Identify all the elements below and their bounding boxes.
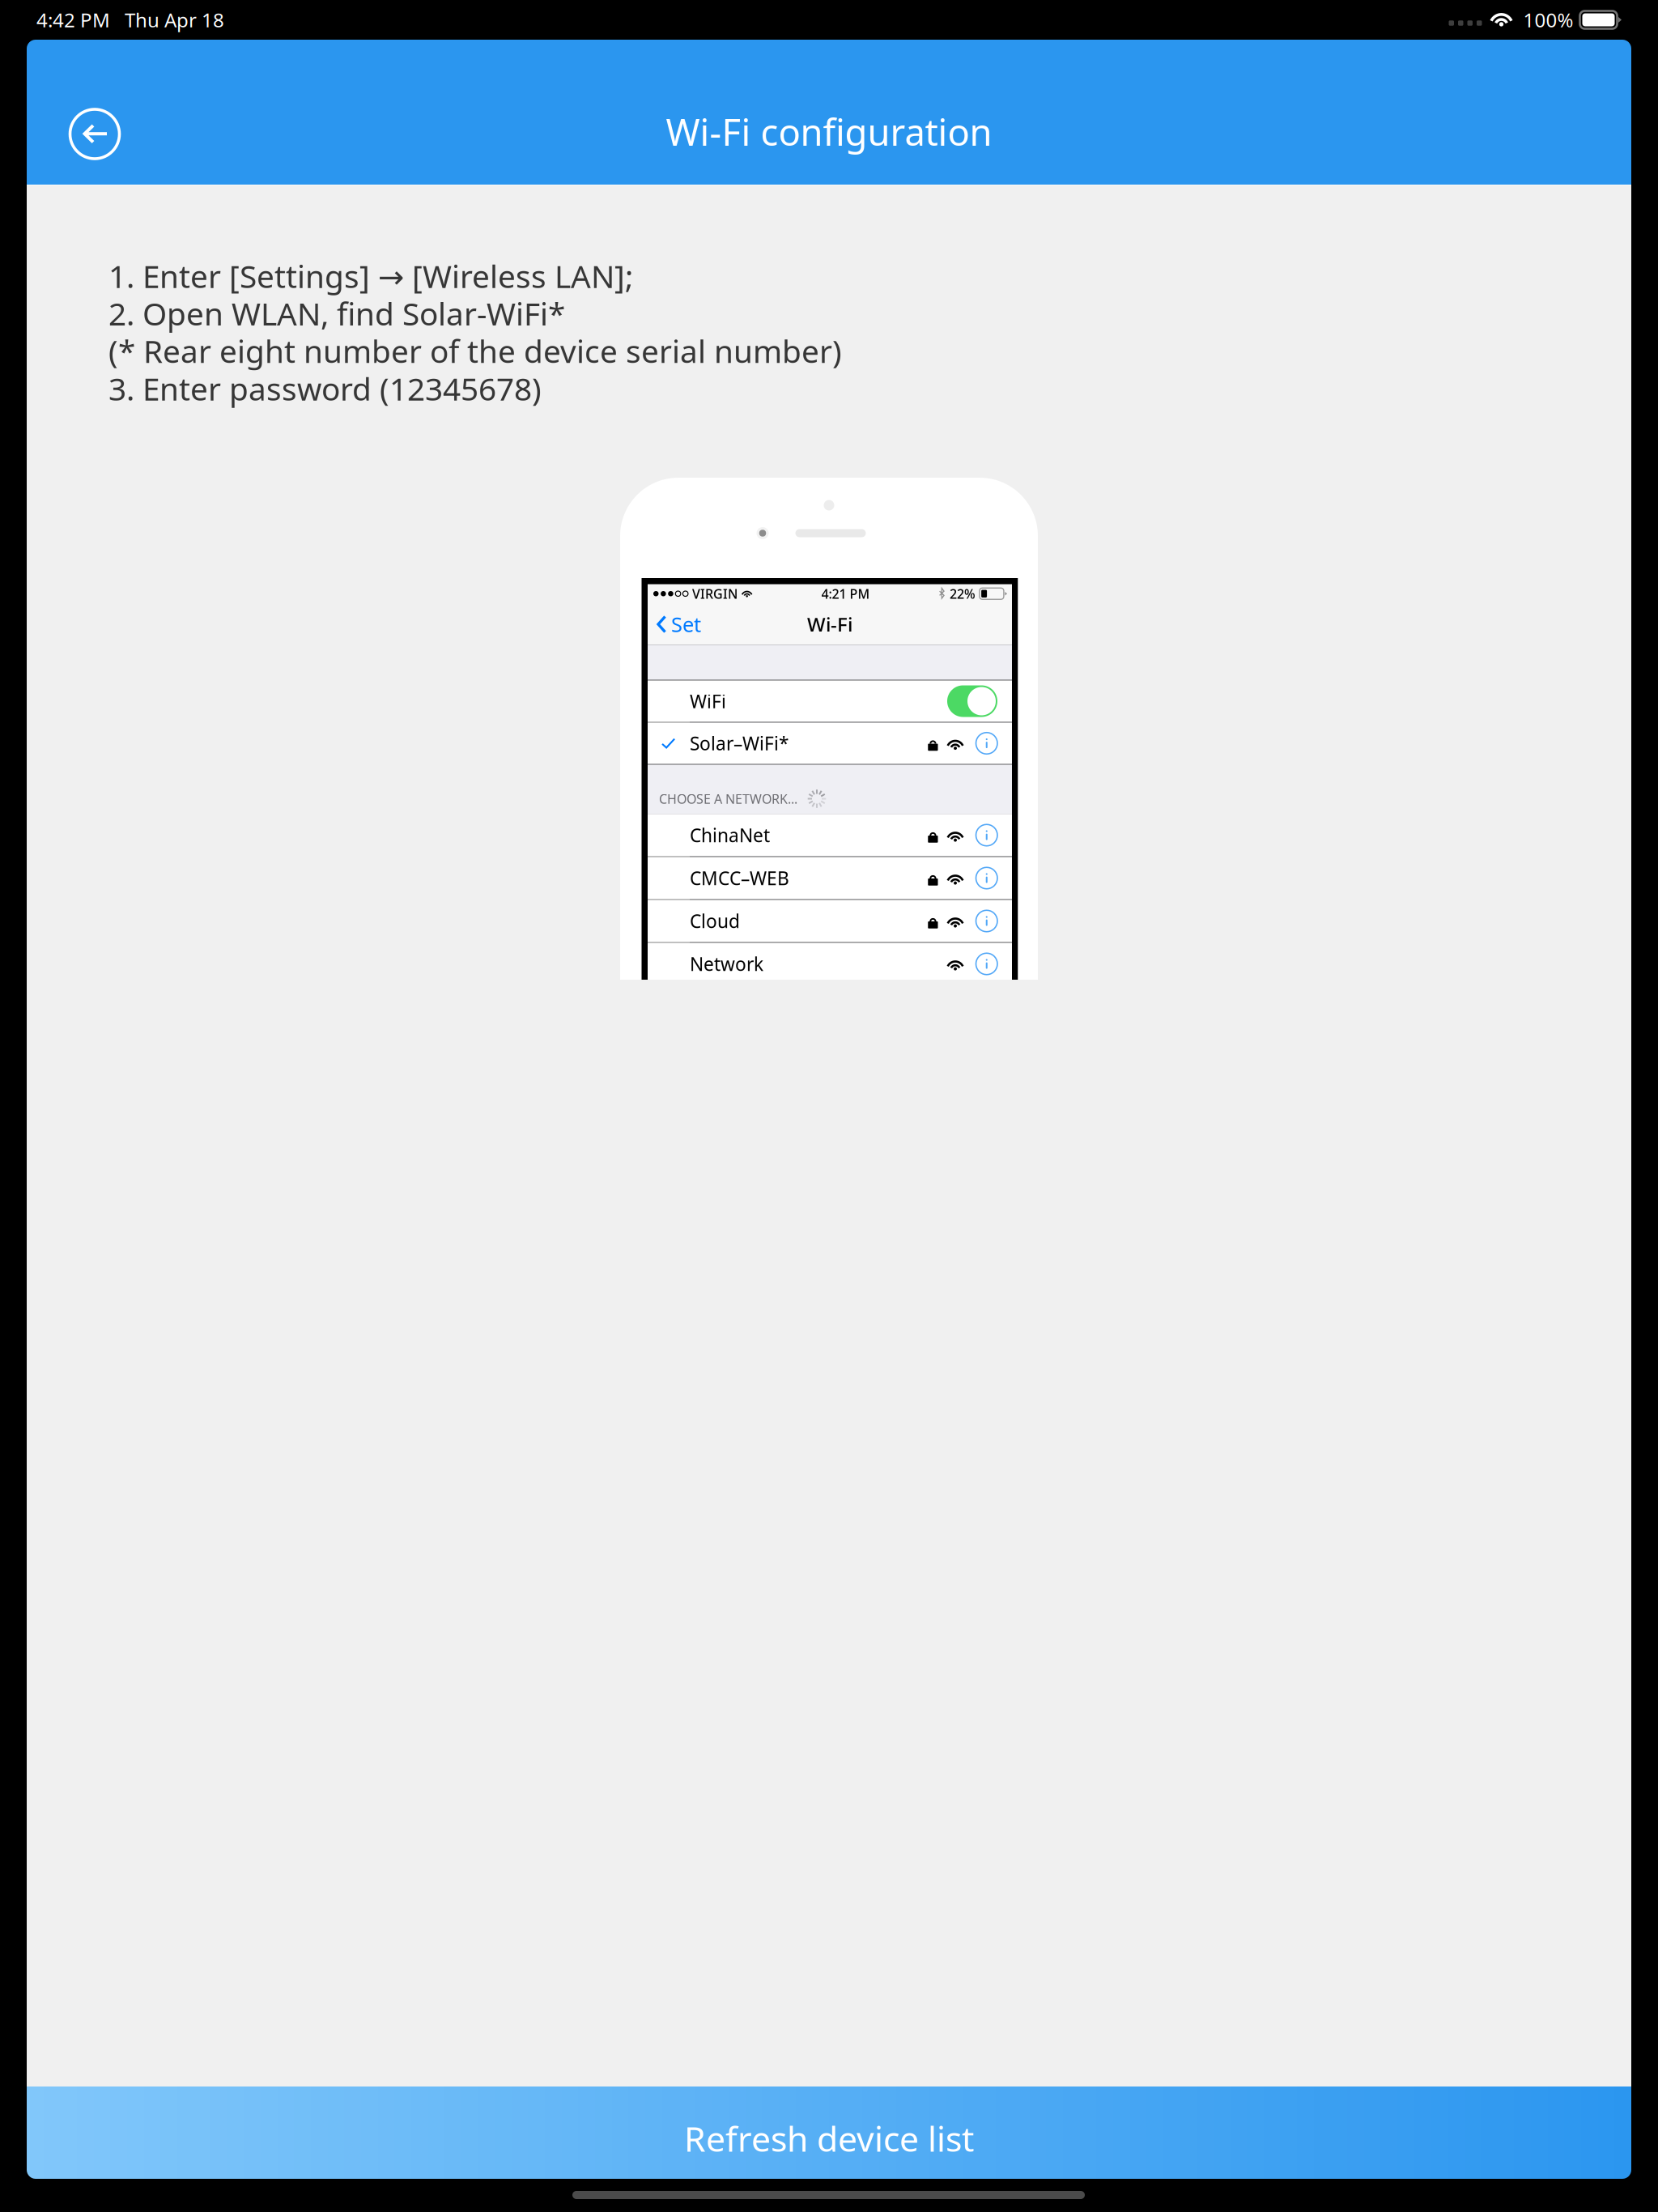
staticText: CHOOSE A NETWORK... — [659, 790, 797, 807]
staticText: ChinaNet — [690, 823, 770, 847]
staticText: 22% — [950, 585, 975, 602]
staticText: Cloud — [690, 909, 740, 933]
staticText: VIRGIN — [692, 585, 737, 602]
staticText: Wi-Fi configuration — [666, 107, 992, 156]
staticText: 4:42 PM Thu Apr 18 — [36, 7, 224, 33]
staticText: Refresh device list — [684, 2115, 974, 2161]
staticText: 4:21 PM — [821, 585, 870, 602]
staticText: 2. Open WLAN, find Solar-WiFi* — [108, 293, 565, 334]
staticText: 100% — [1523, 7, 1573, 33]
staticText: 1. Enter [Settings] → [Wireless LAN]; — [108, 255, 633, 297]
button[interactable]: Refresh device list — [27, 2087, 1631, 2179]
staticText: Network — [690, 952, 763, 976]
button[interactable]: Back — [34, 40, 155, 185]
staticText: CMCC–WEB — [690, 866, 789, 890]
staticText: Solar–WiFi* — [690, 731, 789, 755]
staticText: Set — [671, 611, 701, 638]
staticText: 3. Enter password (12345678) — [108, 368, 542, 409]
staticText: (* Rear eight number of the device seria… — [108, 330, 842, 372]
staticText: WiFi — [690, 689, 726, 713]
staticText: Wi-Fi — [807, 611, 852, 637]
